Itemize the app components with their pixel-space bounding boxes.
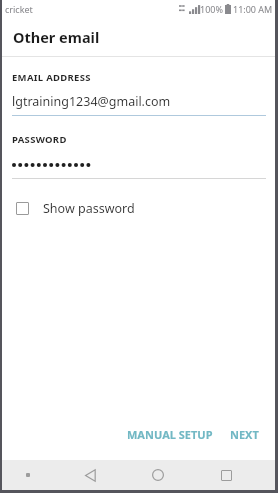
staticText: EMAIL ADDRESS <box>12 71 91 84</box>
button[interactable]: Hide keyboard <box>0 460 56 490</box>
button[interactable]: Show password <box>12 200 266 217</box>
staticText: MANUAL SETUP <box>127 427 213 442</box>
staticText: Other email <box>13 27 100 47</box>
button[interactable]: NEXT <box>225 422 264 447</box>
button[interactable]: Home <box>124 460 192 490</box>
staticText: 100% <box>200 3 223 15</box>
staticText: 11:00 AM <box>233 3 273 15</box>
button[interactable]: Recent apps <box>192 460 260 490</box>
staticText: NEXT <box>230 427 259 442</box>
button[interactable]: MANUAL SETUP <box>122 422 218 447</box>
staticText: Show password <box>43 200 135 217</box>
button[interactable] <box>12 157 266 179</box>
staticText: PASSWORD <box>12 133 67 146</box>
staticText: cricket <box>5 3 33 15</box>
staticText: lgtraining1234@gmail.com <box>12 93 171 110</box>
button[interactable]: Back <box>56 460 124 490</box>
button[interactable]: lgtraining1234@gmail.com <box>12 93 266 116</box>
